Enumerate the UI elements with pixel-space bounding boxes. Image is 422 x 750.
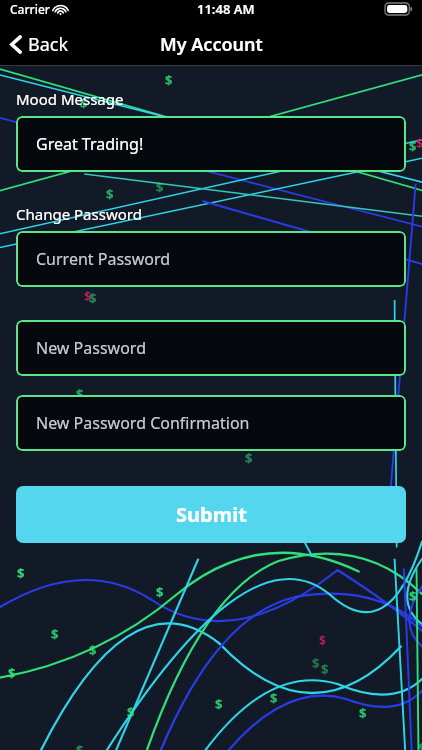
button[interactable]: New Password Confirmation	[16, 395, 406, 451]
staticText: Submit	[176, 501, 247, 528]
staticText: $	[409, 587, 417, 605]
staticText: $	[270, 689, 278, 707]
staticText: New Password	[36, 337, 146, 359]
staticText: $	[89, 289, 97, 307]
staticText: $	[215, 695, 223, 713]
staticText: $	[76, 741, 84, 750]
staticText: $	[409, 137, 417, 155]
button[interactable]: Great Trading!	[16, 116, 406, 172]
staticText: $	[51, 625, 59, 643]
staticText: $	[312, 654, 320, 672]
staticText: $	[89, 641, 97, 659]
staticText: Great Trading!	[36, 133, 144, 155]
staticText: $	[8, 664, 16, 682]
staticText: 11:48 AM	[197, 0, 255, 18]
staticText: $	[80, 94, 88, 112]
staticText: $	[76, 385, 84, 403]
staticText: Mood Message	[16, 89, 124, 109]
staticText: $	[245, 449, 253, 467]
staticText: Change Password	[16, 204, 142, 224]
staticText: $	[416, 134, 422, 152]
button[interactable]: Current Password	[16, 231, 406, 287]
staticText: $	[359, 704, 367, 722]
staticText: New Password Confirmation	[36, 412, 250, 434]
staticText: $	[17, 564, 25, 582]
staticText: Carrier	[10, 1, 50, 17]
staticText: $	[319, 632, 326, 648]
button[interactable]: Submit	[16, 486, 406, 543]
button[interactable]: Back	[0, 24, 83, 65]
staticText: My Account	[160, 32, 263, 57]
staticText: $	[418, 739, 422, 750]
staticText: $	[106, 185, 114, 203]
staticText: $	[84, 287, 92, 305]
staticText: Back	[28, 32, 69, 57]
button[interactable]: New Password	[16, 320, 406, 376]
staticText: $	[321, 660, 329, 678]
staticText: $	[156, 178, 164, 196]
staticText: $	[165, 71, 173, 89]
staticText: $	[127, 703, 135, 721]
staticText: Current Password	[36, 248, 171, 270]
staticText: $	[156, 583, 164, 601]
